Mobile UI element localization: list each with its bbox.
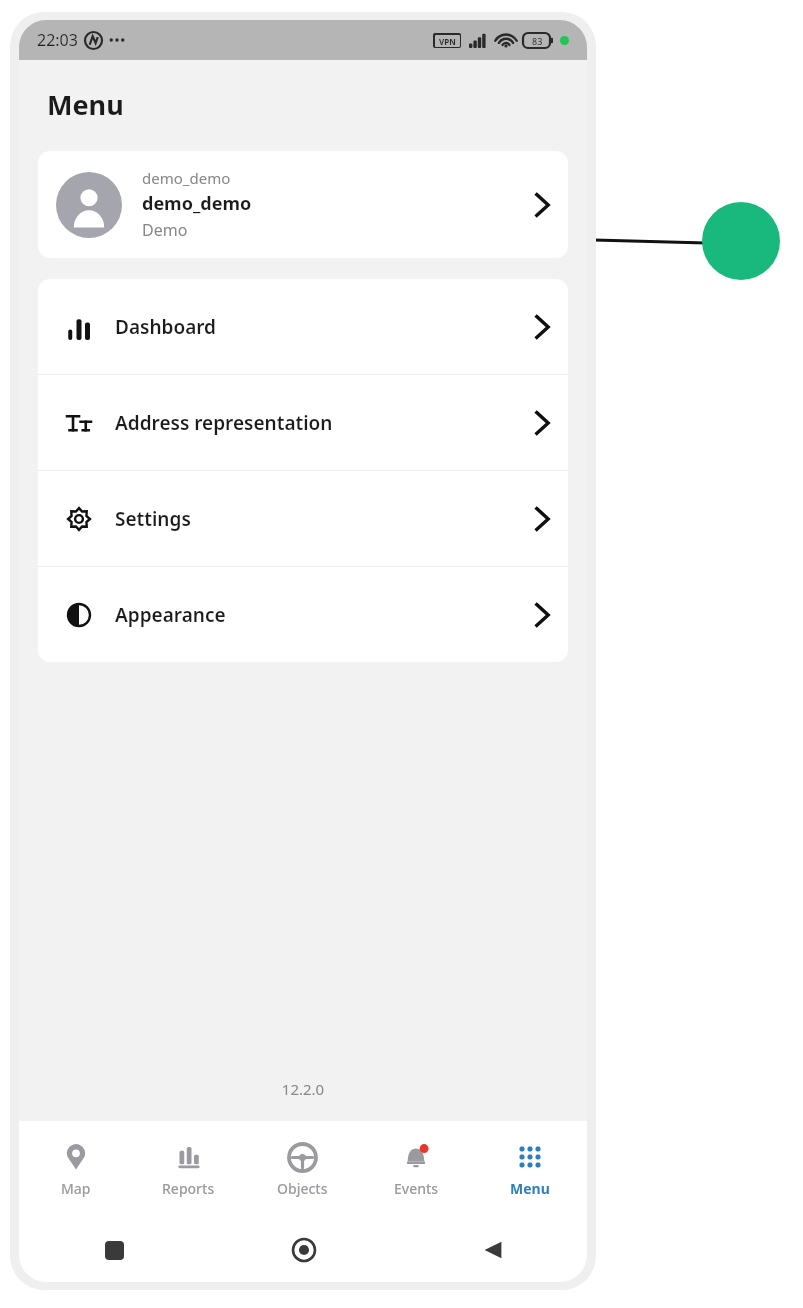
button[interactable]: Home [209, 1218, 398, 1282]
staticText: Events [394, 1179, 439, 1198]
button[interactable]: Settings [38, 471, 568, 566]
staticText: demo_demo [142, 191, 252, 216]
staticText: Settings [115, 506, 191, 532]
staticText: Appearance [115, 602, 226, 628]
button[interactable]: demo_demo [38, 151, 568, 258]
staticText: Reports [162, 1179, 215, 1198]
button[interactable]: Menu [473, 1121, 587, 1218]
button[interactable]: Appearance [38, 567, 568, 662]
button[interactable]: Recent apps [19, 1218, 209, 1282]
staticText: Objects [277, 1179, 328, 1198]
button[interactable]: Map [19, 1121, 132, 1218]
staticText: 83 [532, 35, 543, 47]
staticText: Demo [142, 219, 188, 241]
button[interactable]: Events [359, 1121, 473, 1218]
staticText: Menu [510, 1179, 550, 1198]
staticText: VPN [439, 36, 456, 47]
button[interactable]: Address representation [38, 375, 568, 470]
staticText: Dashboard [115, 314, 217, 340]
staticText: demo_demo [142, 168, 231, 188]
button[interactable]: Dashboard [38, 279, 568, 374]
staticText: 12.2.0 [19, 1079, 587, 1099]
staticText: Menu [47, 86, 124, 123]
button[interactable]: Reports [132, 1121, 245, 1218]
staticText: Address representation [115, 410, 333, 436]
button[interactable]: Back [398, 1218, 587, 1282]
button[interactable]: Objects [245, 1121, 359, 1218]
staticText: 22:03 [37, 29, 78, 51]
staticText: Map [61, 1179, 91, 1198]
